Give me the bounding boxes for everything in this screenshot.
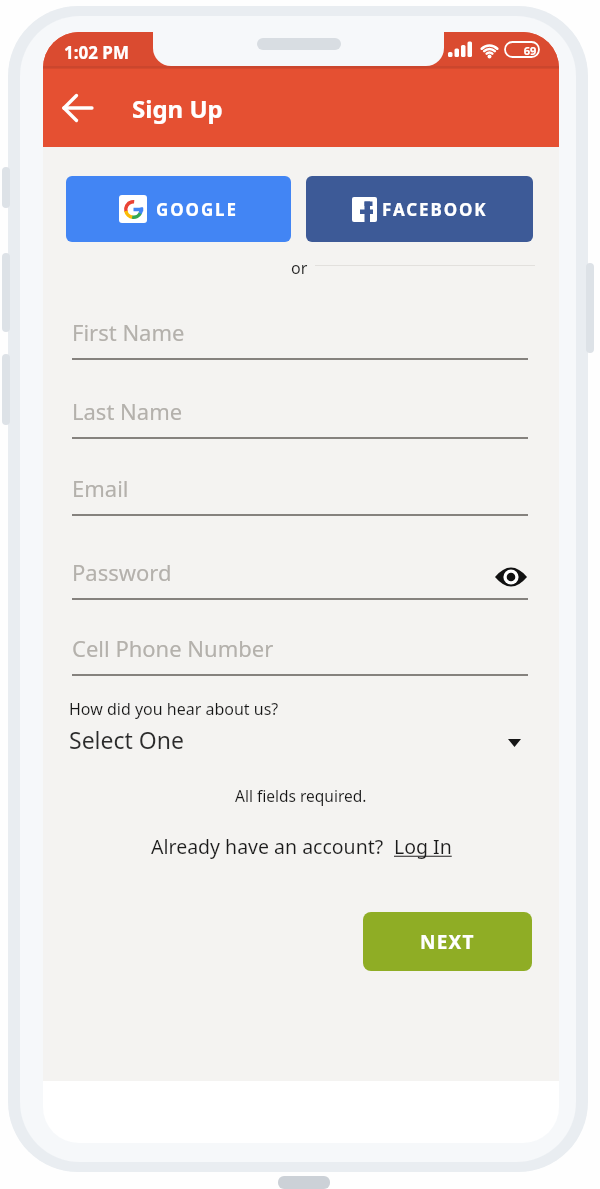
staticText: 1:02 PM <box>64 41 129 64</box>
button[interactable]: FACEBOOK <box>306 176 533 242</box>
button[interactable]: First Name <box>72 317 528 359</box>
button[interactable]: Select One <box>69 724 529 758</box>
staticText: NEXT <box>420 929 475 955</box>
staticText: FACEBOOK <box>382 198 488 221</box>
button[interactable]: Email <box>72 473 528 515</box>
staticText: GOOGLE <box>156 198 238 221</box>
staticText: How did you hear about us? <box>69 698 279 720</box>
staticText: All fields required. <box>235 785 367 806</box>
staticText: Password <box>72 557 172 587</box>
staticText: Select One <box>69 724 184 755</box>
button[interactable]: NEXT <box>363 912 532 971</box>
button[interactable]: Log In <box>394 833 452 860</box>
button[interactable]: GOOGLE <box>66 176 291 242</box>
staticText: Sign Up <box>132 92 223 125</box>
staticText: Cell Phone Number <box>72 633 274 663</box>
button[interactable]: Password <box>72 557 528 599</box>
button[interactable] <box>52 83 104 133</box>
staticText: Already have an account? <box>151 833 384 860</box>
staticText: 69 <box>514 43 546 58</box>
button[interactable]: Last Name <box>72 396 528 438</box>
button[interactable]: Cell Phone Number <box>72 633 528 675</box>
button[interactable] <box>495 566 527 588</box>
staticText: Last Name <box>72 396 183 426</box>
staticText: First Name <box>72 317 185 347</box>
staticText: or <box>291 257 308 279</box>
staticText: Email <box>72 473 129 503</box>
